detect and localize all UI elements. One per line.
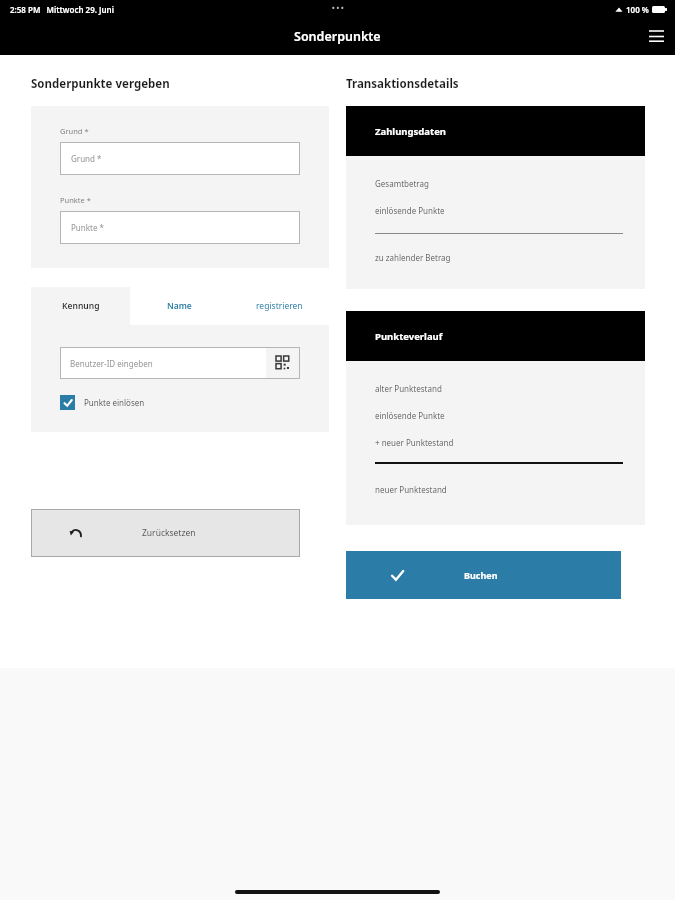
staticText: Punkte * <box>71 222 104 233</box>
staticText: Grund * <box>71 153 102 164</box>
staticText: Zahlungsdaten <box>375 125 446 138</box>
staticText: Buchen <box>464 569 498 581</box>
button[interactable]: Punkte einlösen <box>60 395 145 410</box>
staticText: Kennung <box>62 300 100 312</box>
button[interactable]: Menü <box>637 18 675 55</box>
button[interactable]: Grund * <box>60 142 300 175</box>
staticText: Zurücksetzen <box>142 527 196 539</box>
staticText: Transaktionsdetails <box>346 76 459 92</box>
staticText: zu zahlender Betrag <box>375 252 451 263</box>
staticText: Grund * <box>60 126 89 136</box>
staticText: Name <box>167 300 192 312</box>
button[interactable]: Benutzer-ID eingeben <box>60 347 266 379</box>
button[interactable]: Zurücksetzen <box>31 509 300 557</box>
staticText: Benutzer-ID eingeben <box>70 358 153 369</box>
staticText: alter Punktestand <box>375 383 442 394</box>
staticText: 2:58 PM Mittwoch 29. Juni <box>10 4 114 15</box>
staticText: neuer Punktestand <box>375 484 447 495</box>
staticText: 100 % <box>626 4 649 15</box>
button[interactable]: QR-Code scannen <box>266 347 300 379</box>
staticText: + neuer Punktestand <box>375 437 454 448</box>
button[interactable]: Punkte * <box>60 211 300 244</box>
staticText: Punkte einlösen <box>84 397 145 408</box>
button[interactable]: Kennung <box>31 287 130 325</box>
staticText: Punkteverlauf <box>375 330 443 343</box>
button[interactable]: Buchen <box>346 551 621 599</box>
staticText: Punkte * <box>60 195 91 205</box>
staticText: einlösende Punkte <box>375 410 445 421</box>
staticText: Sonderpunkte vergeben <box>31 76 170 92</box>
button[interactable]: registrieren <box>229 287 329 325</box>
button[interactable]: Name <box>130 287 229 325</box>
staticText: Sonderpunkte <box>294 28 381 45</box>
staticText: Gesamtbetrag <box>375 178 429 189</box>
staticText: • • • <box>332 4 344 14</box>
staticText: einlösende Punkte <box>375 205 445 216</box>
staticText: registrieren <box>256 300 303 312</box>
